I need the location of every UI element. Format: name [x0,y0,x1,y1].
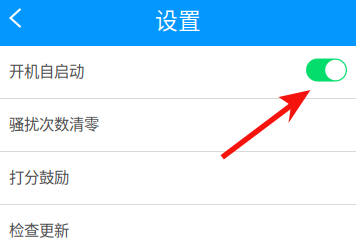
staticText: 开机自启动 [9,59,84,81]
button[interactable]: 检查更新 [0,205,356,246]
button[interactable]: Back [0,0,41,46]
staticText: 设置 [155,3,201,35]
button[interactable]: 开机自启动 [0,46,356,99]
staticText: 骚扰次数清零 [9,112,99,134]
button[interactable]: 骚扰次数清零 [0,99,356,152]
staticText: 检查更新 [9,218,69,240]
staticText: 打分鼓励 [9,165,69,187]
button[interactable]: 打分鼓励 [0,152,356,205]
